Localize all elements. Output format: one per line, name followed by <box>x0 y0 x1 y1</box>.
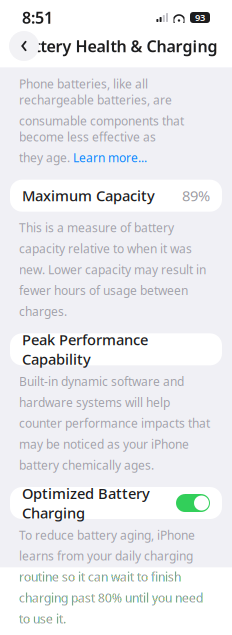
staticText: Phone batteries, like all rechargeable b… <box>19 76 172 108</box>
button[interactable]: Maximum Capacity <box>10 180 222 212</box>
staticText: Built-in dynamic software and hardware s… <box>19 373 210 473</box>
staticText: Optimized Battery Charging <box>22 484 150 523</box>
staticText: consumable components that become less e… <box>19 113 184 145</box>
button[interactable]: Optimized Battery Charging <box>10 487 222 519</box>
staticText: they age. <box>19 150 70 166</box>
staticText: Maximum Capacity <box>22 186 155 205</box>
button[interactable]: Learn more... <box>73 150 147 166</box>
staticText: Peak Performance Capability <box>22 330 148 369</box>
staticText: 89% <box>182 186 210 205</box>
staticText: This is a measure of battery capacity re… <box>19 220 206 319</box>
staticText: Battery Health & Charging <box>14 35 217 57</box>
staticText: 93 <box>195 11 205 24</box>
button[interactable]: Optimized Battery Charging <box>176 494 210 512</box>
button[interactable]: Peak Performance Capability <box>10 333 222 365</box>
staticText: Learn more... <box>73 150 147 166</box>
staticText: 8:51 <box>22 7 53 28</box>
button[interactable]: Back <box>9 31 39 61</box>
staticText: To reduce battery aging, iPhone learns f… <box>19 527 203 627</box>
